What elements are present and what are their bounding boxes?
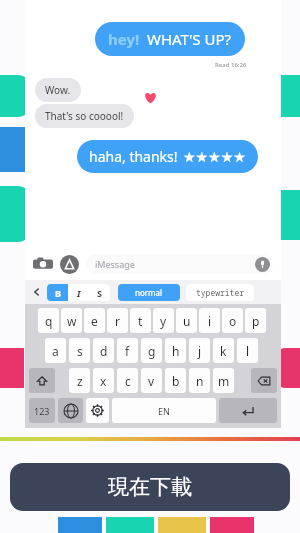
button[interactable]: g — [141, 338, 162, 363]
button[interactable]: Shift — [29, 368, 55, 393]
button[interactable]: d — [93, 338, 114, 363]
button[interactable]: Camera — [33, 254, 53, 274]
staticText: n — [196, 373, 204, 389]
button[interactable]: e — [84, 308, 105, 333]
staticText: B — [55, 287, 61, 299]
button[interactable]: w — [61, 308, 82, 333]
staticText: v — [148, 373, 155, 389]
staticText: l — [246, 343, 250, 359]
staticText: m — [218, 373, 230, 389]
button[interactable]: x — [93, 368, 114, 393]
staticText: f — [125, 343, 130, 359]
button[interactable]: a — [45, 338, 66, 363]
button[interactable]: Wow. — [45, 83, 71, 97]
button[interactable]: That's so cooool! — [45, 109, 124, 123]
staticText: h — [172, 343, 180, 359]
staticText: ★★★★★ — [183, 149, 246, 165]
staticText: EN — [158, 405, 170, 417]
button[interactable]: 現在下載 — [10, 463, 290, 511]
staticText: t — [138, 313, 143, 329]
staticText: o — [229, 313, 237, 329]
staticText: That's so cooool! — [45, 109, 124, 123]
staticText: x — [100, 373, 107, 389]
staticText: S — [97, 287, 102, 299]
button[interactable]: j — [189, 338, 210, 363]
staticText: z — [77, 373, 83, 389]
button[interactable]: u — [176, 308, 197, 333]
staticText: g — [148, 343, 156, 359]
button[interactable]: v — [141, 368, 162, 393]
staticText: k — [220, 343, 227, 359]
staticText: d — [100, 343, 108, 359]
staticText: c — [125, 373, 131, 389]
staticText: a — [52, 343, 59, 359]
button[interactable]: n — [189, 368, 210, 393]
staticText: I — [77, 287, 81, 299]
button[interactable]: b — [165, 368, 186, 393]
staticText: typewriter — [196, 287, 244, 298]
staticText: normal — [135, 287, 163, 298]
button[interactable]: S — [89, 284, 110, 301]
button[interactable]: t — [130, 308, 151, 333]
staticText: p — [252, 313, 260, 329]
button[interactable]: Change language — [58, 398, 83, 423]
button[interactable]: z — [69, 368, 90, 393]
button[interactable]: hey! — [108, 29, 232, 49]
staticText: j — [198, 343, 202, 359]
button[interactable]: h — [165, 338, 186, 363]
button[interactable]: p — [245, 308, 266, 333]
button[interactable]: l — [237, 338, 258, 363]
staticText: r — [115, 313, 120, 329]
button[interactable]: i — [199, 308, 220, 333]
staticText: u — [183, 313, 191, 329]
button[interactable]: iMessage — [95, 254, 270, 274]
button[interactable]: c — [117, 368, 138, 393]
staticText: 123 — [34, 405, 50, 417]
button[interactable]: App Store — [60, 255, 79, 274]
staticText: 現在下載 — [108, 474, 192, 500]
button[interactable]: normal — [118, 284, 180, 301]
button[interactable]: typewriter — [186, 284, 254, 301]
button[interactable]: Back — [30, 285, 44, 299]
staticText: Wow. — [45, 83, 71, 97]
staticText: hey! — [108, 29, 140, 49]
button[interactable]: m — [213, 368, 234, 393]
button[interactable]: Settings — [86, 398, 109, 423]
staticText: w — [67, 313, 77, 329]
staticText: y — [160, 313, 167, 329]
button[interactable]: I — [68, 284, 89, 301]
button[interactable]: 123 — [29, 398, 55, 423]
button[interactable]: q — [38, 308, 59, 333]
button[interactable]: k — [213, 338, 234, 363]
staticText: iMessage — [95, 258, 135, 270]
staticText: haha, thanks! — [89, 147, 178, 166]
staticText: i — [208, 313, 212, 329]
staticText: WHAT'S UP? — [147, 29, 232, 49]
button[interactable]: f — [117, 338, 138, 363]
button[interactable]: B — [47, 284, 68, 301]
staticText: s — [77, 343, 83, 359]
button[interactable]: Enter — [219, 398, 277, 423]
button[interactable]: Backspace — [251, 368, 277, 393]
button[interactable]: r — [107, 308, 128, 333]
button[interactable]: s — [69, 338, 90, 363]
button[interactable]: y — [153, 308, 174, 333]
staticText: e — [91, 313, 98, 329]
button[interactable]: EN — [112, 398, 216, 423]
staticText: q — [45, 313, 53, 329]
staticText: Read 16:26 — [215, 61, 247, 69]
staticText: b — [172, 373, 180, 389]
button[interactable]: haha, thanks! — [89, 147, 246, 166]
button[interactable]: o — [222, 308, 243, 333]
